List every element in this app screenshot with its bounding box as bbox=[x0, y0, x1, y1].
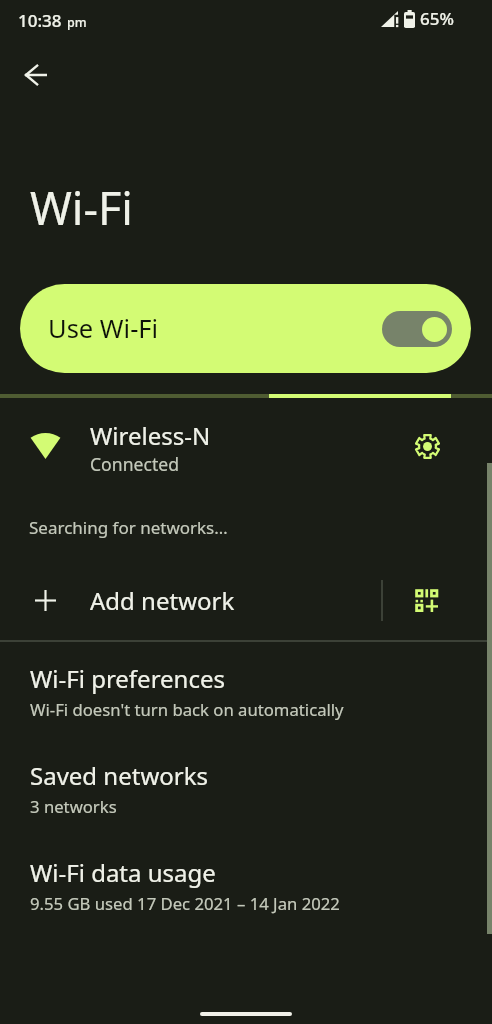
button[interactable]: Scan QR code bbox=[405, 578, 449, 622]
staticText: Add network bbox=[90, 584, 235, 617]
staticText: Wi-Fi data usage bbox=[30, 856, 216, 889]
button[interactable]: Network settings bbox=[405, 424, 449, 468]
staticText: 10:38 bbox=[18, 9, 62, 32]
button[interactable]: Back bbox=[14, 52, 59, 97]
staticText: 3 networks bbox=[30, 795, 117, 818]
staticText: Wi-Fi doesn't turn back on automatically bbox=[30, 698, 344, 721]
staticText: Saved networks bbox=[30, 759, 209, 792]
staticText: Wireless-N bbox=[90, 419, 211, 452]
staticText: Connected bbox=[90, 452, 179, 476]
button[interactable]: Wireless-N bbox=[0, 404, 492, 488]
button[interactable]: Add network bbox=[0, 564, 492, 636]
staticText: 65% bbox=[420, 7, 454, 30]
button[interactable]: Use Wi-Fi bbox=[20, 284, 471, 373]
staticText: Searching for networks… bbox=[29, 516, 228, 539]
staticText: Wi-Fi preferences bbox=[30, 662, 225, 695]
staticText: Use Wi-Fi bbox=[48, 311, 159, 346]
staticText: Wi-Fi bbox=[30, 177, 133, 238]
button[interactable]: Saved networks bbox=[0, 759, 492, 855]
button[interactable]: Wi-Fi preferences bbox=[0, 662, 492, 758]
staticText: 9.55 GB used 17 Dec 2021 – 14 Jan 2022 bbox=[30, 892, 340, 915]
button[interactable]: Wi-Fi data usage bbox=[0, 856, 492, 952]
staticText: pm bbox=[67, 14, 87, 31]
